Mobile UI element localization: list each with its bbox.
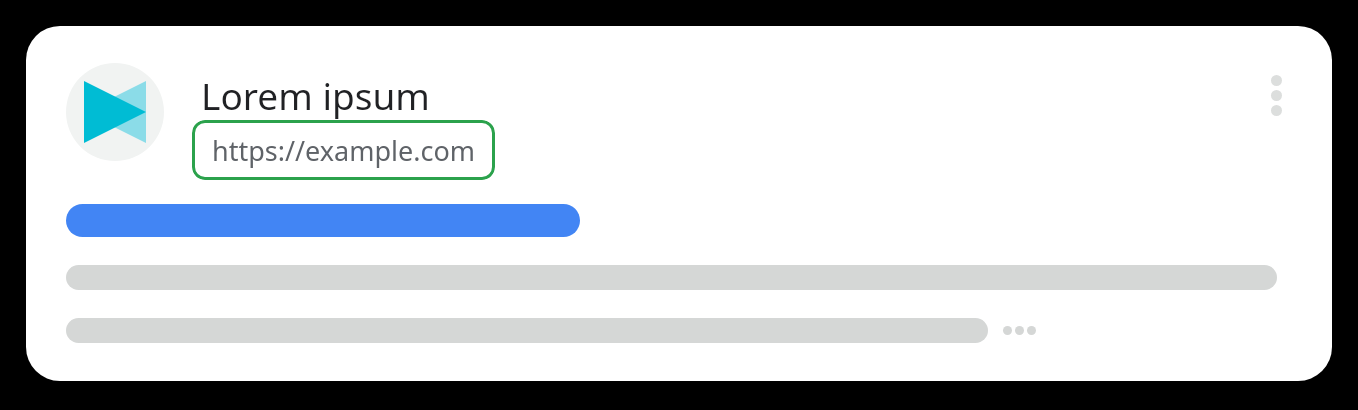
button[interactable]: More options (1250, 62, 1302, 128)
button[interactable] (66, 204, 580, 237)
button[interactable]: Lorem ipsum (201, 70, 430, 120)
staticText: https://example.com (212, 132, 475, 169)
button[interactable]: https://example.com (192, 120, 495, 180)
staticText: Lorem ipsum (201, 70, 430, 120)
button[interactable]: App icon (66, 63, 164, 161)
